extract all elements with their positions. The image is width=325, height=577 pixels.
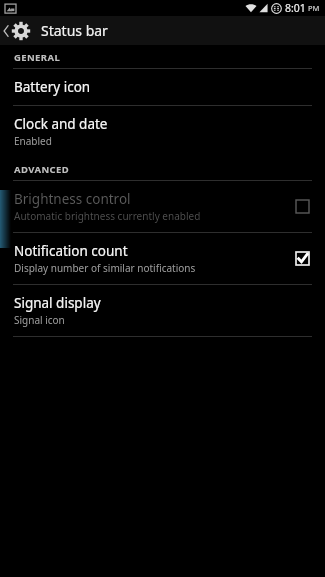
button[interactable]: Signal display bbox=[0, 285, 325, 336]
staticText: Clock and date bbox=[14, 115, 108, 133]
button[interactable]: Clock and date bbox=[0, 106, 325, 157]
staticText: ADVANCED bbox=[14, 163, 70, 176]
staticText: Status bar bbox=[41, 21, 108, 40]
staticText: 8:01 bbox=[285, 1, 306, 15]
button[interactable]: Navigate up bbox=[0, 19, 33, 43]
staticText: GENERAL bbox=[14, 51, 61, 64]
button[interactable]: Brightness control bbox=[0, 181, 325, 232]
staticText: Battery icon bbox=[14, 78, 91, 96]
staticText: PM bbox=[308, 3, 320, 13]
staticText: Signal icon bbox=[14, 313, 65, 327]
staticText: Notification count bbox=[14, 242, 128, 260]
staticText: Brightness control bbox=[14, 190, 131, 208]
button[interactable]: Unchecked bbox=[292, 196, 313, 217]
staticText: Display number of similar notifications bbox=[14, 261, 196, 275]
button[interactable]: Battery icon bbox=[0, 69, 325, 105]
staticText: Enabled bbox=[14, 134, 52, 148]
button[interactable]: Checked bbox=[292, 248, 313, 269]
staticText: Signal display bbox=[14, 294, 101, 312]
button[interactable]: Notification count bbox=[0, 233, 325, 284]
staticText: Automatic brightness currently enabled bbox=[14, 209, 201, 223]
